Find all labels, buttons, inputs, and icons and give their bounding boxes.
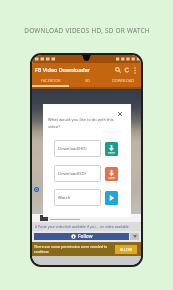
button[interactable]: Download(SD)	[54, 165, 130, 182]
button[interactable]: FACEBOOK	[32, 76, 69, 87]
staticText: FB Video Downloader	[35, 66, 91, 73]
staticText: Watch	[58, 195, 71, 201]
staticText: DOWNLOAD VIDEOS HD, SD OR WATCH	[24, 26, 150, 35]
button[interactable]	[40, 215, 138, 221]
staticText: What would you like to do with this vide…	[48, 117, 117, 129]
staticText: Download(SD)	[58, 171, 86, 177]
button[interactable]: Watch	[54, 189, 130, 206]
staticText: FACEBOOK	[41, 78, 61, 83]
button[interactable]: Watch	[105, 191, 118, 205]
button[interactable]: More options	[131, 66, 139, 74]
button[interactable]: Follow	[34, 233, 129, 240]
button[interactable]: Search	[113, 65, 122, 74]
staticText: ALLOW	[120, 247, 133, 252]
button[interactable]: DOWNLOAD	[105, 76, 141, 87]
staticText: DOWNLOAD	[112, 78, 135, 83]
button[interactable]: Close	[115, 109, 125, 119]
button[interactable]: Download(HD)	[54, 140, 130, 157]
button[interactable]: Download(HD)	[105, 142, 118, 156]
staticText: Download(HD)	[58, 146, 87, 152]
button[interactable]: SD	[69, 76, 105, 87]
staticText: There are some permission were needed to…	[34, 244, 113, 254]
staticText: Follow	[78, 233, 93, 240]
button[interactable]: Refresh	[122, 65, 131, 74]
button[interactable]: Download(SD)	[105, 167, 118, 181]
staticText: # Paste your video link available if you…	[35, 224, 129, 229]
staticText: SD	[85, 78, 90, 83]
button[interactable]: Expand	[130, 233, 139, 240]
button[interactable]: ALLOW	[115, 245, 137, 254]
